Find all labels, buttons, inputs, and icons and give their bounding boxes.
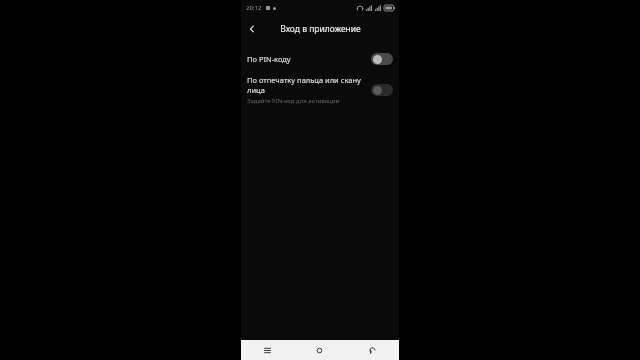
button[interactable]: Переключатель: [371, 84, 393, 96]
button[interactable]: По PIN-коду: [241, 48, 399, 70]
button[interactable]: Назад: [346, 340, 399, 360]
button[interactable]: Переключатель: [371, 53, 393, 65]
staticText: По отпечатку пальца или скану лица: [247, 75, 361, 95]
button[interactable]: Назад: [241, 18, 263, 40]
button[interactable]: Недавние: [241, 340, 293, 360]
button[interactable]: Главный экран: [293, 340, 346, 360]
staticText: По PIN-коду: [247, 54, 291, 64]
button[interactable]: По отпечатку пальца или скану лица: [241, 70, 399, 110]
staticText: 20:12: [246, 4, 262, 12]
staticText: Задайте PIN-код для активации: [247, 97, 340, 105]
staticText: Вход в приложение: [280, 23, 361, 35]
